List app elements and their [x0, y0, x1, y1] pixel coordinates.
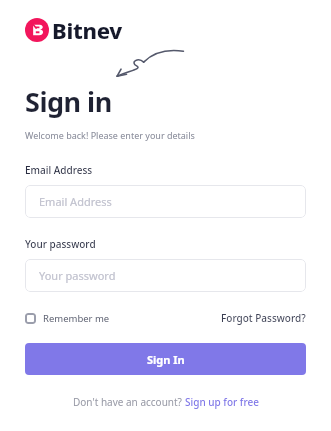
staticText: Your password: [25, 237, 96, 251]
button[interactable]: Remember me: [25, 312, 110, 325]
staticText: Sign in: [25, 83, 112, 120]
button[interactable]: Bitnev home: [25, 15, 122, 45]
button[interactable]: Sign In: [25, 343, 306, 375]
staticText: Welcome back! Please enter your details: [25, 129, 195, 141]
staticText: Email Address: [39, 194, 112, 209]
staticText: Your password: [39, 268, 116, 283]
staticText: Don't have an account?: [73, 395, 185, 409]
button[interactable]: Email Address: [25, 185, 306, 218]
staticText: Sign In: [147, 352, 185, 367]
button[interactable]: Forgot Password?: [221, 311, 306, 325]
staticText: Remember me: [43, 312, 110, 325]
button[interactable]: Your password: [25, 259, 306, 292]
staticText: Forgot Password?: [221, 311, 306, 325]
staticText: Email Address: [25, 163, 93, 177]
staticText: Sign up for free: [185, 395, 259, 409]
staticText: Bitnev: [52, 15, 122, 45]
button[interactable]: Sign up for free: [185, 395, 259, 409]
